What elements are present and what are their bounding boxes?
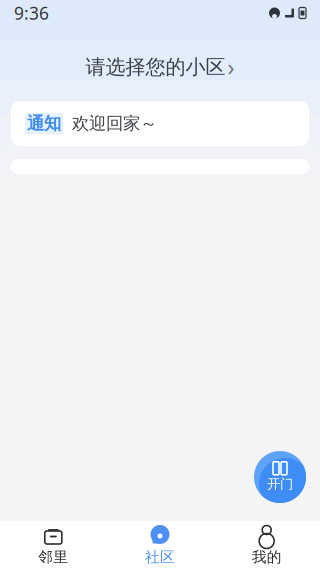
staticText: 开门 bbox=[267, 476, 293, 492]
button[interactable]: 通知 bbox=[11, 101, 309, 146]
staticText: 我的 bbox=[252, 548, 282, 566]
staticText: 社区 bbox=[145, 548, 175, 566]
button[interactable]: 社区 bbox=[107, 519, 213, 569]
button[interactable]: 开门 bbox=[254, 451, 306, 503]
staticText: › bbox=[227, 52, 234, 82]
button[interactable]: 邻里 bbox=[0, 519, 107, 569]
staticText: 9:36 bbox=[14, 1, 49, 24]
staticText: 请选择您的小区 bbox=[85, 55, 225, 79]
staticText: 通知 bbox=[27, 113, 61, 134]
button[interactable]: 我的 bbox=[213, 519, 320, 569]
button[interactable]: 请选择您的小区 bbox=[75, 46, 244, 88]
staticText: 邻里 bbox=[38, 548, 68, 566]
staticText: 欢迎回家～ bbox=[72, 113, 157, 134]
